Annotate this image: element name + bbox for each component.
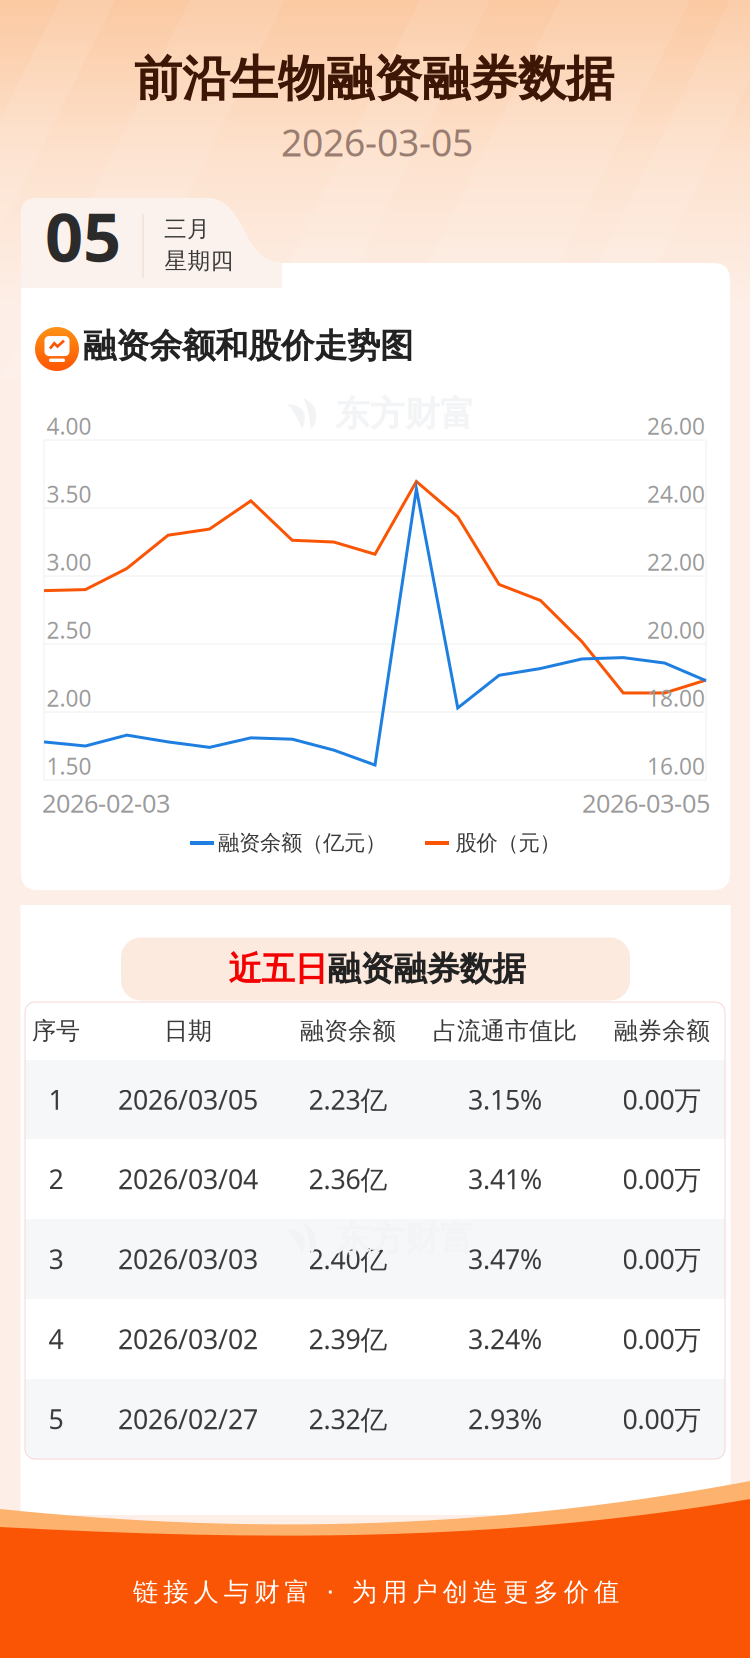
staticText: 融资余额 [300, 1016, 396, 1046]
staticText: 2026-03-05 [582, 786, 710, 820]
staticText: 2.32亿 [308, 1401, 387, 1437]
staticText: 融资余额和股价走势图 [83, 325, 413, 366]
staticText: 2026/03/05 [118, 1082, 258, 1117]
staticText: 2026/02/27 [118, 1401, 258, 1437]
staticText: 1.50 [46, 751, 91, 781]
staticText: 链接人与财富 · 为用户创造更多价值 [133, 1574, 619, 1608]
staticText: 2026/03/02 [118, 1321, 258, 1357]
staticText: 3.50 [46, 479, 91, 509]
staticText: 日期 [164, 1016, 212, 1046]
staticText: 2026/03/03 [118, 1241, 258, 1277]
staticText: 2.39亿 [308, 1321, 387, 1357]
staticText: 0.00万 [622, 1401, 701, 1437]
staticText: 三月 [164, 215, 210, 243]
staticText: 融券余额 [614, 1016, 710, 1046]
staticText: 股价（元） [455, 830, 560, 856]
staticText: 2.40亿 [308, 1241, 387, 1277]
staticText: 1 [48, 1082, 63, 1117]
staticText: 22.00 [647, 547, 705, 577]
staticText: 融资融券数据 [327, 948, 525, 989]
staticText: 2.23亿 [308, 1082, 387, 1117]
staticText: 2026-02-03 [42, 786, 170, 820]
staticText: 18.00 [647, 683, 705, 713]
staticText: 序号 [32, 1016, 80, 1046]
staticText: 3.41% [468, 1161, 542, 1197]
staticText: 前沿生物融资融券数据 [134, 49, 614, 108]
staticText: 0.00万 [622, 1161, 701, 1197]
staticText: 2.00 [46, 683, 91, 713]
staticText: 05 [45, 192, 121, 280]
staticText: 2.36亿 [308, 1161, 387, 1197]
staticText: 2026/03/04 [118, 1161, 258, 1197]
staticText: 4 [48, 1321, 63, 1357]
staticText: 3.24% [468, 1321, 542, 1357]
staticText: 3.15% [468, 1082, 542, 1117]
staticText: 星期四 [164, 247, 233, 275]
staticText: 3 [48, 1241, 63, 1277]
staticText: 近五日 [228, 948, 327, 989]
staticText: 3.47% [468, 1241, 542, 1277]
staticText: 2026-03-05 [281, 117, 473, 167]
staticText: 0.00万 [622, 1321, 701, 1357]
staticText: 融资余额（亿元） [218, 830, 386, 856]
staticText: 2.93% [468, 1401, 542, 1437]
staticText: 3.00 [46, 547, 91, 577]
staticText: 0.00万 [622, 1241, 701, 1277]
staticText: 0.00万 [622, 1082, 701, 1117]
staticText: 16.00 [647, 751, 705, 781]
staticText: 占流通市值比 [433, 1016, 577, 1046]
staticText: 24.00 [647, 479, 705, 509]
staticText: 2 [48, 1161, 63, 1197]
staticText: 2.50 [46, 615, 91, 645]
staticText: 5 [48, 1401, 63, 1437]
staticText: 26.00 [647, 411, 705, 441]
staticText: 20.00 [647, 615, 705, 645]
staticText: 东方财富 [335, 1218, 475, 1260]
staticText: 4.00 [46, 411, 91, 441]
staticText: 东方财富 [335, 393, 475, 435]
